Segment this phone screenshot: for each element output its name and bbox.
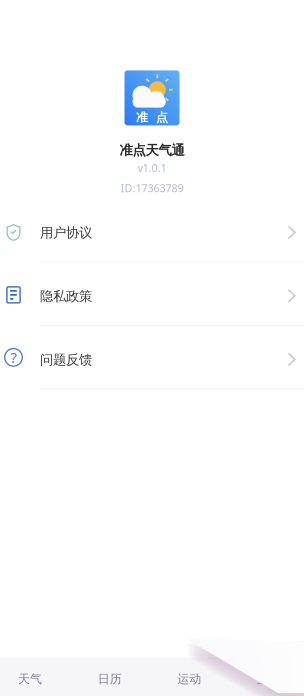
staticText: 生活: [257, 672, 281, 686]
staticText: 隐私政策: [40, 288, 92, 304]
staticText: 天气: [18, 672, 42, 686]
button[interactable]: ?: [0, 326, 304, 390]
button[interactable]: 用户协议: [0, 199, 304, 263]
button[interactable]: 运动: [149, 658, 229, 696]
staticText: 运动: [177, 672, 201, 686]
staticText: 准点天气通: [119, 142, 184, 158]
staticText: 问题反馈: [40, 352, 92, 368]
staticText: 用户协议: [40, 225, 92, 241]
button[interactable]: 隐私政策: [0, 263, 304, 326]
staticText: v1.0.1: [137, 161, 166, 175]
button[interactable]: 天气: [0, 658, 70, 696]
button[interactable]: 日历: [70, 658, 149, 696]
staticText: ID:17363789: [120, 181, 183, 195]
staticText: ?: [10, 348, 16, 367]
button[interactable]: 生活: [229, 658, 304, 696]
staticText: 日历: [98, 672, 122, 686]
staticText: 准 点: [136, 110, 168, 125]
